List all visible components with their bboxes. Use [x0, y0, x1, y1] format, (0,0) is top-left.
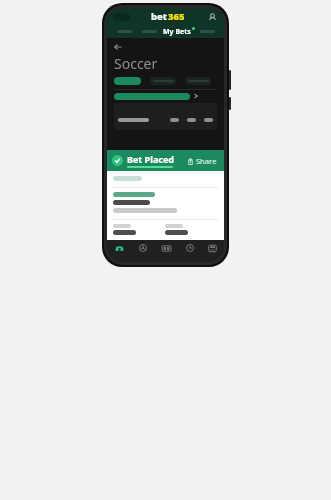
button[interactable]: Share [185, 154, 219, 168]
staticText: bet [151, 10, 168, 23]
staticText: 365 [168, 10, 185, 23]
button[interactable] [111, 25, 137, 38]
staticText: Soccer [114, 54, 158, 73]
button[interactable]: Sports [131, 240, 155, 256]
button[interactable]: Account [206, 11, 218, 23]
button[interactable] [187, 118, 196, 122]
button[interactable] [170, 118, 179, 122]
button[interactable]: Bet Slip [201, 240, 224, 256]
button[interactable]: In-Play [155, 240, 178, 256]
staticText: Bet Placed [127, 153, 174, 165]
button[interactable] [195, 25, 220, 38]
button[interactable] [204, 118, 213, 122]
button[interactable]: Home [107, 240, 131, 256]
button[interactable]: Live [178, 240, 201, 256]
staticText: Share [196, 156, 217, 166]
staticText: My Bets [163, 27, 191, 37]
button[interactable]: Back [114, 42, 124, 52]
button[interactable] [150, 77, 176, 85]
button[interactable] [185, 77, 211, 85]
button[interactable] [114, 103, 217, 130]
button[interactable]: My Bets [162, 25, 195, 38]
button[interactable] [114, 77, 141, 85]
button[interactable] [137, 25, 162, 38]
button[interactable] [114, 92, 217, 100]
